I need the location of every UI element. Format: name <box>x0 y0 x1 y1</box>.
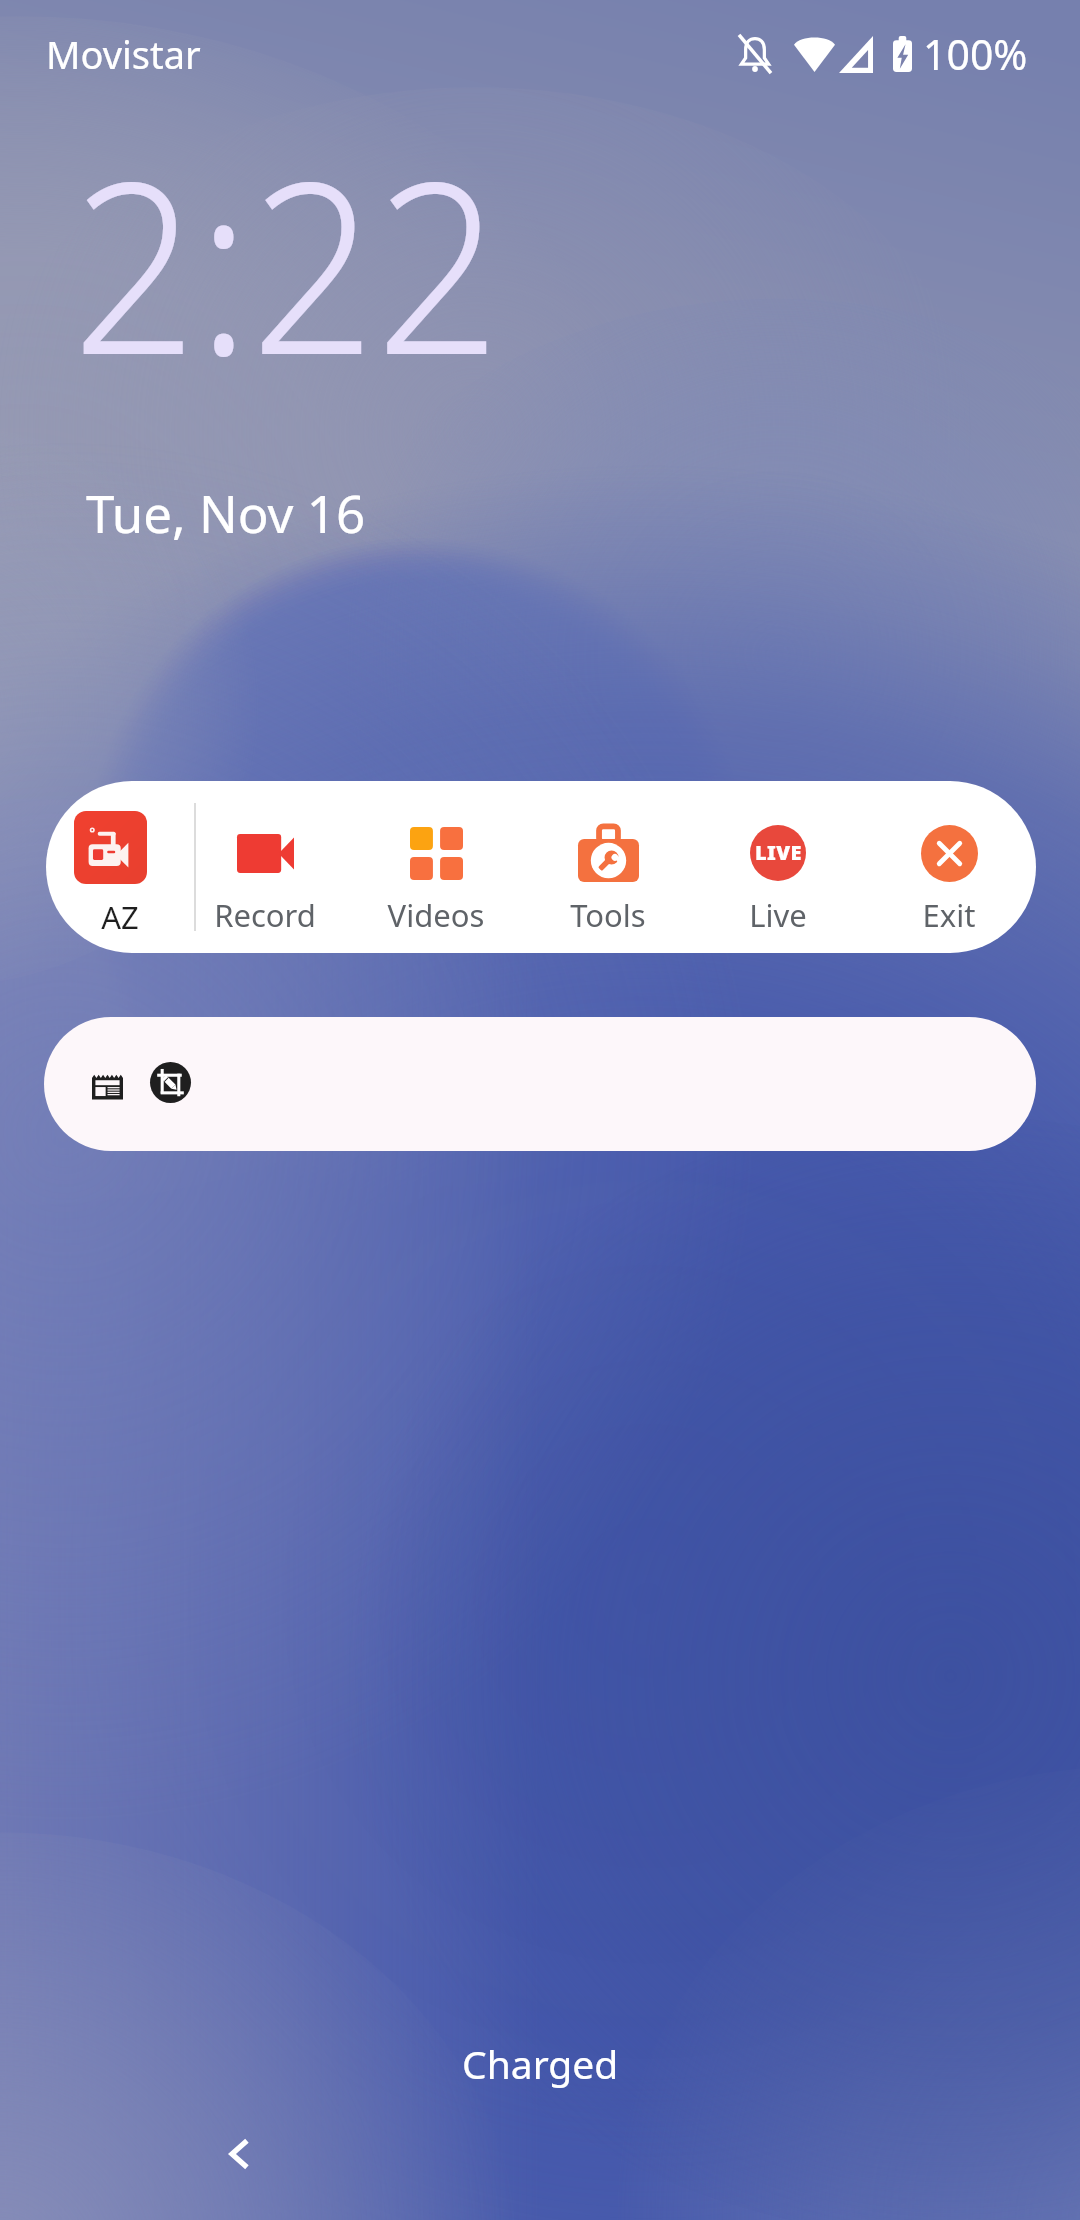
staticText: 2:22 <box>72 100 501 424</box>
button[interactable]: News feed <box>85 1061 134 1110</box>
staticText: AZ <box>46 896 194 938</box>
button[interactable]: Tools <box>523 781 693 953</box>
staticText: Videos <box>351 894 521 936</box>
button[interactable]: Edit screenshot <box>145 1057 196 1108</box>
staticText: LIVE <box>755 839 802 866</box>
staticText: Tools <box>523 894 693 936</box>
staticText: 100% <box>923 26 1028 82</box>
button[interactable]: AZ <box>46 781 194 953</box>
button[interactable]: Back <box>203 2118 275 2190</box>
button[interactable]: Record <box>180 781 350 953</box>
staticText: Charged <box>462 2037 619 2090</box>
staticText: Movistar <box>46 28 201 80</box>
button[interactable]: LIVE <box>693 781 863 953</box>
staticText: Live <box>693 894 863 936</box>
staticText: Tue, Nov 16 <box>86 478 366 547</box>
button[interactable]: Videos <box>351 781 521 953</box>
staticText: Record <box>180 894 350 936</box>
staticText: Exit <box>864 894 1034 936</box>
button[interactable]: Exit <box>864 781 1034 953</box>
